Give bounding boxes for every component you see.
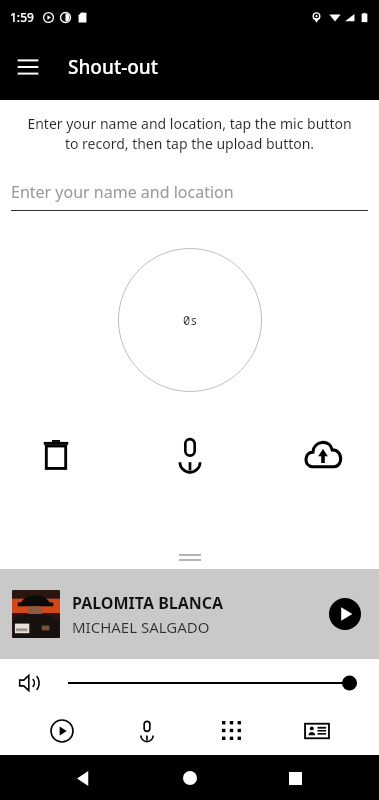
button[interactable]: Enter your name and location [11, 181, 368, 211]
button[interactable]: Expand player [0, 545, 379, 569]
button[interactable]: Recent apps [274, 757, 316, 799]
staticText: MICHAEL SALGADO [72, 617, 210, 637]
button[interactable]: PALOMITA BLANCA [0, 569, 379, 659]
staticText: Enter your name and location [11, 181, 234, 203]
button[interactable]: Apps grid [209, 708, 255, 754]
button[interactable]: Home [169, 757, 211, 799]
staticText: 0s [183, 312, 198, 328]
button[interactable]: Volume [14, 667, 46, 699]
button[interactable]: Contacts [294, 708, 340, 754]
staticText: 1:59 [10, 9, 34, 25]
staticText: Shout-out [68, 54, 159, 80]
staticText: PALOMITA BLANCA [72, 592, 224, 614]
button[interactable]: 0s [118, 248, 262, 392]
button[interactable]: Open navigation menu [4, 43, 52, 91]
button[interactable]: Delete recording [30, 429, 82, 481]
button[interactable]: Record with microphone [164, 429, 216, 481]
staticText: Enter your name and location, tap the mi… [22, 114, 357, 153]
button[interactable]: Back [63, 757, 105, 799]
button[interactable]: Volume slider [68, 669, 357, 697]
button[interactable]: Play [323, 592, 367, 636]
button[interactable]: Record [124, 708, 170, 754]
button[interactable]: Play [39, 708, 85, 754]
button[interactable]: Upload recording [297, 429, 349, 481]
